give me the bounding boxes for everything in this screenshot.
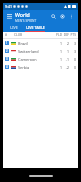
button[interactable]: 4 [3, 63, 78, 71]
staticText: Brazil [18, 41, 55, 46]
staticText: World Championship [15, 11, 49, 18]
staticText: 2 [62, 41, 69, 46]
staticText: 4 [6, 65, 8, 69]
staticText: 0 [69, 57, 76, 62]
staticText: 2 [6, 49, 8, 53]
staticText: Serbia [18, 65, 55, 70]
button[interactable]: Open navigation menu [5, 12, 14, 21]
staticText: LIVE TABLE [26, 25, 45, 30]
staticText: 1 [62, 49, 69, 54]
staticText: CLUB [14, 33, 55, 37]
staticText: 1 [55, 57, 62, 62]
staticText: PTS [69, 33, 76, 37]
staticText: # [5, 33, 9, 37]
staticText: Cameroon [18, 57, 55, 62]
button[interactable]: Search [49, 12, 58, 21]
staticText: 3 [69, 49, 76, 54]
button[interactable]: More options [67, 12, 76, 21]
button[interactable]: LIVE TABLE [22, 23, 48, 32]
staticText: 3 [6, 57, 8, 61]
staticText: -2 [62, 65, 69, 70]
staticText: -1 [62, 57, 69, 62]
button[interactable]: LIVE [6, 23, 22, 32]
staticText: 1 [55, 65, 62, 70]
button[interactable]: 2 [3, 47, 78, 55]
staticText: LIVE [10, 25, 18, 30]
staticText: 1 [6, 41, 8, 45]
staticText: DIF [62, 33, 69, 37]
button[interactable]: Settings [58, 12, 67, 21]
staticText: 1 [55, 49, 62, 54]
staticText: 9:41 [5, 4, 12, 9]
button[interactable]: World Championship [15, 11, 49, 23]
staticText: 3 [69, 41, 76, 46]
button[interactable]: 1 [3, 39, 78, 47]
button[interactable]: 3 [3, 55, 78, 63]
staticText: PLD [55, 33, 62, 37]
staticText: 1 [55, 41, 62, 46]
staticText: 0 [69, 65, 76, 70]
staticText: MEN'S SPRINT [15, 19, 37, 23]
staticText: Switzerland [18, 49, 55, 54]
